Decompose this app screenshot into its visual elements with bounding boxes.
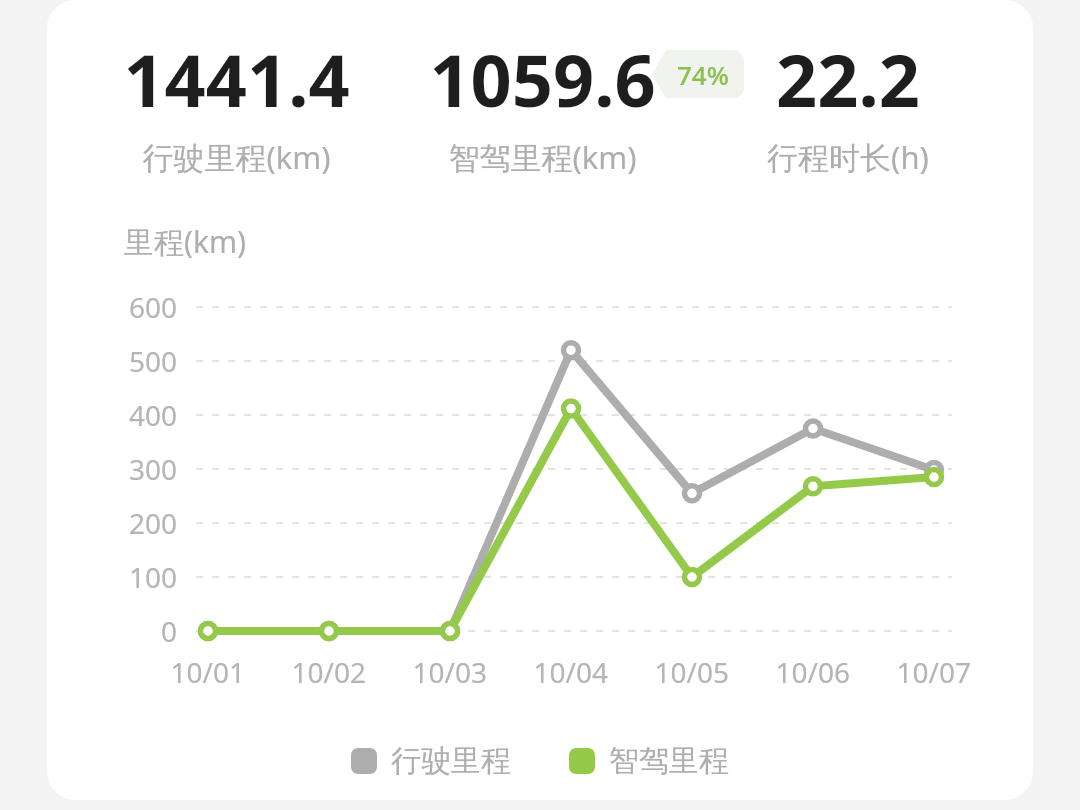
button[interactable]: 行驶里程 xyxy=(351,742,511,780)
staticText: 智驾里程(km) xyxy=(448,136,637,178)
staticText: 智驾里程 xyxy=(609,742,729,780)
button[interactable]: 1059.6 xyxy=(392,30,692,178)
staticText: 行驶里程 xyxy=(391,742,511,780)
button[interactable]: 智驾里程 xyxy=(569,742,729,780)
staticText: 1441.4 xyxy=(123,30,350,128)
staticText: 行驶里程(km) xyxy=(142,136,331,178)
staticText: 里程(km) xyxy=(124,221,247,262)
button[interactable]: 22.2 xyxy=(698,30,998,178)
staticText: 行程时长(h) xyxy=(767,136,929,178)
button[interactable]: 74% xyxy=(652,50,744,98)
staticText: 22.2 xyxy=(776,30,920,128)
button[interactable]: 1441.4 xyxy=(86,30,386,178)
staticText: 74% xyxy=(677,57,729,92)
staticText: 1059.6 xyxy=(429,30,656,128)
